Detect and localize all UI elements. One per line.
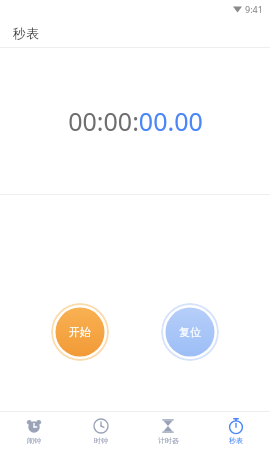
button[interactable]: 开始 [51, 303, 109, 361]
staticText: 秒表 [229, 436, 243, 445]
button[interactable]: 计时器 [134, 412, 202, 450]
staticText: 开始 [69, 325, 91, 339]
button[interactable]: 时钟 [67, 412, 134, 450]
staticText: 闹钟 [27, 436, 41, 445]
staticText: 计时器 [158, 436, 179, 445]
staticText: 00:00:00.00 [68, 104, 203, 138]
button[interactable]: 秒表 [202, 412, 270, 450]
button[interactable]: 复位 [161, 303, 219, 361]
staticText: 复位 [179, 325, 201, 339]
staticText: 时钟 [94, 436, 108, 445]
staticText: 9:41 [245, 3, 263, 15]
staticText: 秒表 [13, 25, 39, 41]
button[interactable]: 闹钟 [0, 412, 67, 450]
